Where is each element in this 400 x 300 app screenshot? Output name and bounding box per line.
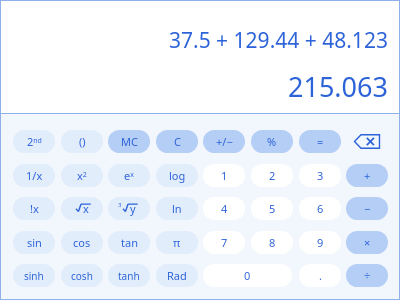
staticText: − bbox=[364, 201, 371, 216]
button[interactable]: = bbox=[299, 130, 341, 153]
button[interactable]: 1/x bbox=[13, 164, 55, 187]
staticText: 215.063 bbox=[288, 68, 388, 105]
staticText: x2 bbox=[77, 168, 87, 183]
staticText: = bbox=[317, 134, 324, 149]
button[interactable]: tan bbox=[108, 231, 150, 254]
staticText: 3 bbox=[317, 168, 324, 183]
button[interactable]: MC bbox=[108, 130, 150, 153]
staticText: 0 bbox=[244, 268, 251, 283]
staticText: 5 bbox=[269, 201, 276, 216]
button[interactable]: × bbox=[346, 231, 388, 254]
staticText: () bbox=[79, 134, 86, 149]
staticText: ex bbox=[124, 168, 134, 183]
button[interactable]: x2 bbox=[61, 164, 103, 187]
button[interactable]: ln bbox=[156, 197, 198, 220]
staticText: . bbox=[319, 268, 322, 283]
staticText: 37.5 + 129.44 + 48.123 bbox=[169, 26, 388, 55]
staticText: tan bbox=[121, 235, 138, 250]
button[interactable]: 0 bbox=[203, 264, 292, 287]
staticText: 7 bbox=[221, 235, 228, 250]
staticText: 2nd bbox=[27, 134, 42, 149]
staticText: 2 bbox=[269, 168, 276, 183]
staticText: y bbox=[130, 201, 136, 216]
staticText: ln bbox=[172, 201, 182, 216]
button[interactable]: + bbox=[346, 164, 388, 187]
button[interactable]: 7 bbox=[203, 231, 245, 254]
button[interactable]: 3 bbox=[299, 164, 341, 187]
staticText: 4 bbox=[221, 201, 228, 216]
button[interactable]: Backspace bbox=[346, 130, 388, 153]
button[interactable]: () bbox=[61, 130, 103, 153]
button[interactable]: cosh bbox=[61, 264, 103, 287]
button[interactable]: − bbox=[346, 197, 388, 220]
staticText: ÷ bbox=[364, 268, 371, 283]
button[interactable]: 1 bbox=[203, 164, 245, 187]
button[interactable]: sinh bbox=[13, 264, 55, 287]
staticText: cos bbox=[73, 235, 91, 250]
button[interactable]: ÷ bbox=[346, 264, 388, 287]
button[interactable]: 2 bbox=[251, 164, 293, 187]
staticText: C bbox=[174, 134, 181, 149]
button[interactable]: sin bbox=[13, 231, 55, 254]
button[interactable]: C bbox=[156, 130, 198, 153]
staticText: 6 bbox=[317, 201, 324, 216]
button[interactable]: cos bbox=[61, 231, 103, 254]
staticText: % bbox=[267, 134, 277, 149]
button[interactable]: 6 bbox=[299, 197, 341, 220]
button[interactable]: log bbox=[156, 164, 198, 187]
staticText: sinh bbox=[24, 269, 44, 283]
staticText: log bbox=[169, 168, 186, 183]
staticText: +/− bbox=[216, 134, 233, 149]
staticText: cosh bbox=[71, 269, 93, 283]
button[interactable]: tanh bbox=[108, 264, 150, 287]
button[interactable]: +/− bbox=[203, 130, 245, 153]
button[interactable]: ex bbox=[108, 164, 150, 187]
staticText: π bbox=[173, 235, 181, 250]
button[interactable]: 8 bbox=[251, 231, 293, 254]
staticText: + bbox=[364, 168, 371, 183]
staticText: × bbox=[364, 235, 371, 250]
button[interactable]: . bbox=[299, 264, 341, 287]
staticText: 8 bbox=[269, 235, 276, 250]
button[interactable]: % bbox=[251, 130, 293, 153]
staticText: MC bbox=[121, 134, 138, 149]
button[interactable]: 9 bbox=[299, 231, 341, 254]
button[interactable]: x bbox=[61, 197, 103, 220]
button[interactable]: 5 bbox=[251, 197, 293, 220]
button[interactable]: π bbox=[156, 231, 198, 254]
staticText: tanh bbox=[118, 269, 140, 283]
staticText: 9 bbox=[317, 235, 324, 250]
staticText: 1/x bbox=[26, 168, 43, 183]
button[interactable]: Rad bbox=[156, 264, 198, 287]
button[interactable]: 2nd bbox=[13, 130, 55, 153]
button[interactable]: y bbox=[108, 197, 150, 220]
staticText: sin bbox=[27, 235, 42, 250]
staticText: x bbox=[83, 201, 89, 216]
staticText: 1 bbox=[221, 168, 228, 183]
button[interactable]: 4 bbox=[203, 197, 245, 220]
staticText: 3 bbox=[118, 201, 122, 209]
staticText: Rad bbox=[167, 268, 187, 283]
staticText: !x bbox=[30, 201, 39, 216]
button[interactable]: !x bbox=[13, 197, 55, 220]
